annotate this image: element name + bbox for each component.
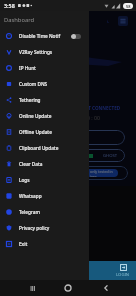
staticText: LOGIN bbox=[116, 272, 130, 278]
button[interactable]: Disable Time Notif bbox=[0, 28, 89, 44]
button[interactable]: Logs bbox=[0, 172, 89, 188]
button[interactable]: GHOST bbox=[11, 149, 125, 162]
staticText: Custom DNS bbox=[19, 81, 48, 87]
button[interactable]: Theme bbox=[103, 16, 114, 27]
button[interactable]: IP Hunt bbox=[0, 60, 89, 76]
staticText: Disable Time Notif bbox=[19, 33, 61, 39]
button[interactable]: Whatsapp bbox=[0, 188, 89, 204]
staticText: NOT CONNECTED bbox=[81, 105, 121, 111]
staticText: Tethering bbox=[19, 97, 41, 103]
button[interactable]: Custom DNS bbox=[0, 76, 89, 92]
staticText: V2Ray Settings bbox=[19, 49, 53, 55]
staticText: Dashboard bbox=[4, 16, 35, 24]
staticText: Exit bbox=[19, 241, 28, 247]
staticText: Logs bbox=[19, 177, 30, 183]
staticText: 3:58 bbox=[4, 2, 15, 9]
button[interactable]: Back bbox=[98, 280, 114, 296]
button[interactable]: Home bbox=[60, 280, 76, 296]
staticText: Whatsapp bbox=[19, 193, 42, 199]
button[interactable]: Clear Data bbox=[0, 156, 89, 172]
button[interactable]: only tested in iraq bbox=[4, 169, 118, 177]
button[interactable]: Servers bbox=[118, 16, 128, 26]
button[interactable]: Exit bbox=[0, 236, 89, 252]
button[interactable]: V2Ray Settings bbox=[0, 44, 89, 60]
button[interactable]: Privacy policy bbox=[0, 220, 89, 236]
button[interactable]: LOGIN bbox=[10, 261, 136, 281]
staticText: Online Update bbox=[19, 113, 52, 119]
staticText: IP Hunt bbox=[19, 65, 36, 71]
staticText: Telegram bbox=[19, 209, 40, 215]
button[interactable]: Telegram bbox=[0, 204, 89, 220]
button[interactable] bbox=[11, 130, 125, 145]
staticText: 00 : 00 : 00 bbox=[74, 114, 100, 121]
button[interactable]: Clipboard Update bbox=[0, 140, 89, 156]
staticText: Clear Data bbox=[19, 161, 43, 167]
staticText: GHOST bbox=[103, 153, 118, 159]
button[interactable]: Recents bbox=[24, 280, 40, 296]
staticText: Offline Update bbox=[19, 129, 52, 135]
staticText: only tested in iraq bbox=[90, 169, 118, 177]
staticText: Privacy policy bbox=[19, 225, 50, 231]
staticText: Clipboard Update bbox=[19, 145, 59, 151]
button[interactable]: Online Update bbox=[0, 108, 89, 124]
button[interactable]: Offline Update bbox=[0, 124, 89, 140]
button[interactable]: Tethering bbox=[0, 92, 89, 108]
staticText: 58 bbox=[126, 4, 131, 9]
